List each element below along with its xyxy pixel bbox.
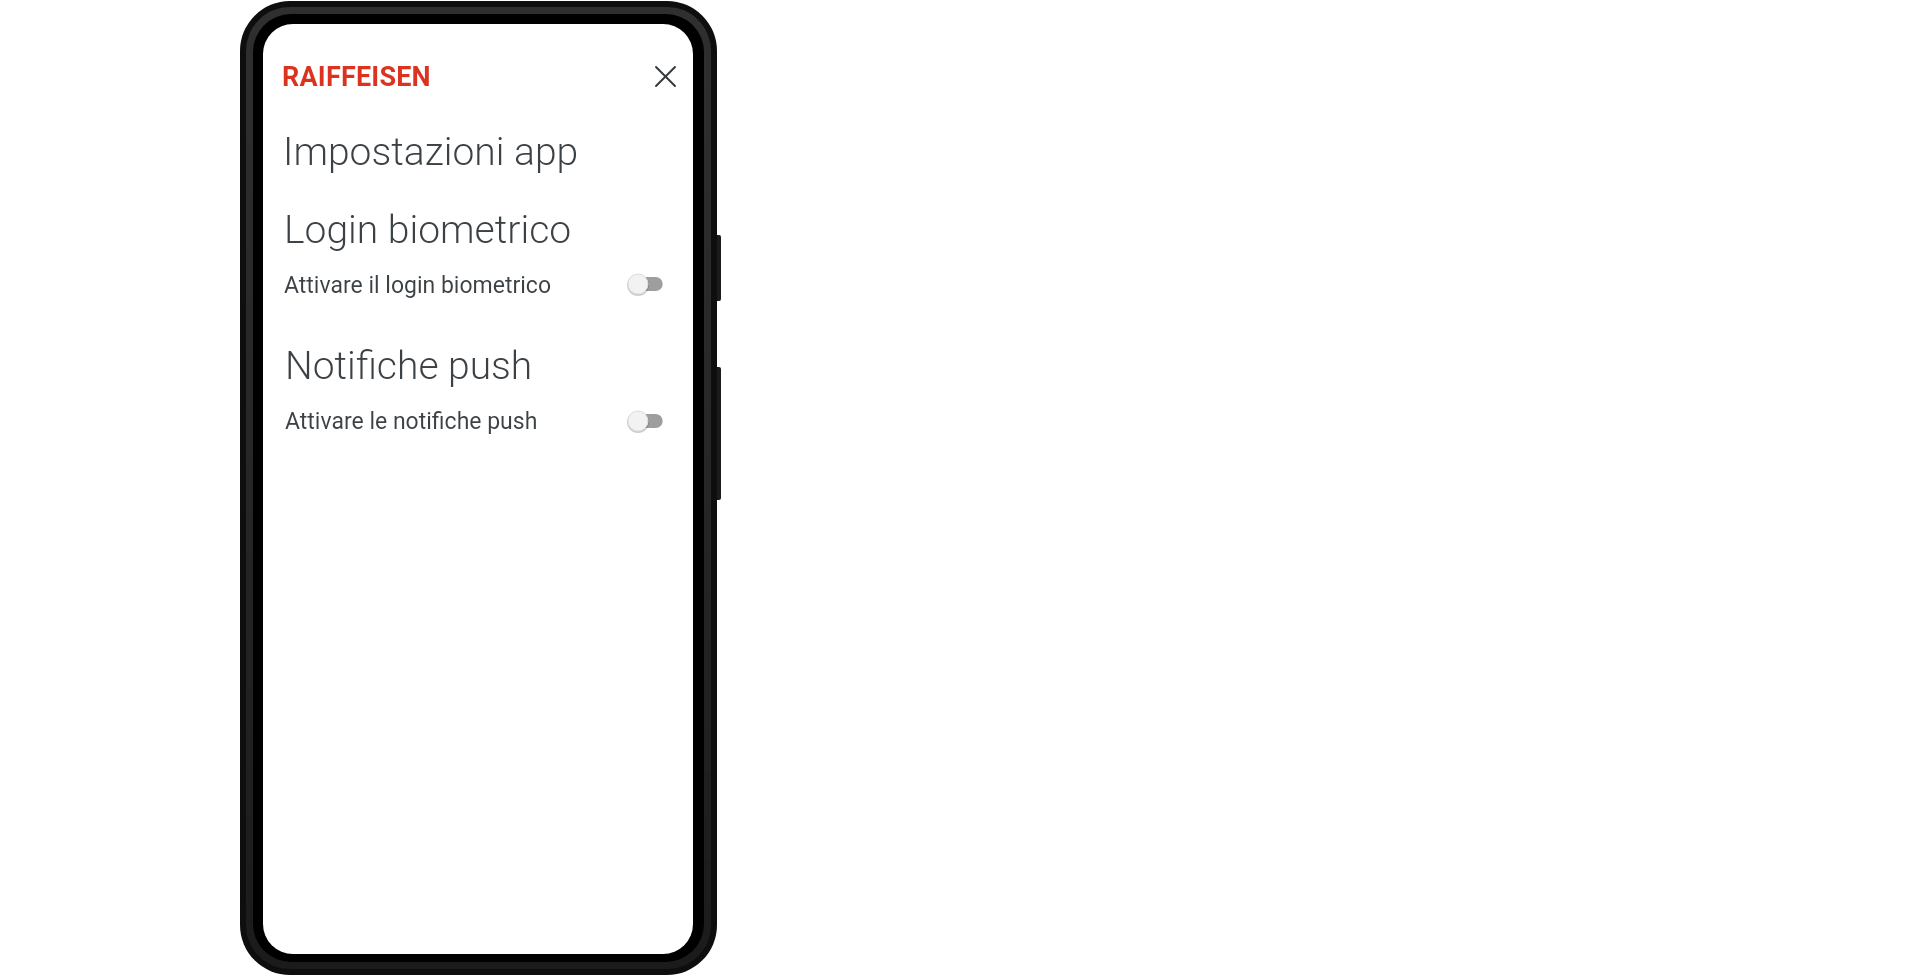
- button[interactable]: [626, 272, 672, 296]
- button[interactable]: [651, 62, 680, 91]
- staticText: Notifiche push: [285, 343, 533, 389]
- staticText: Login biometrico: [284, 207, 572, 253]
- staticText: Attivare il login biometrico: [284, 272, 551, 299]
- staticText: RAIFFEISEN: [282, 61, 431, 93]
- staticText: Impostazioni app: [283, 129, 579, 175]
- staticText: Attivare le notifiche push: [285, 408, 538, 435]
- button[interactable]: [626, 409, 672, 433]
